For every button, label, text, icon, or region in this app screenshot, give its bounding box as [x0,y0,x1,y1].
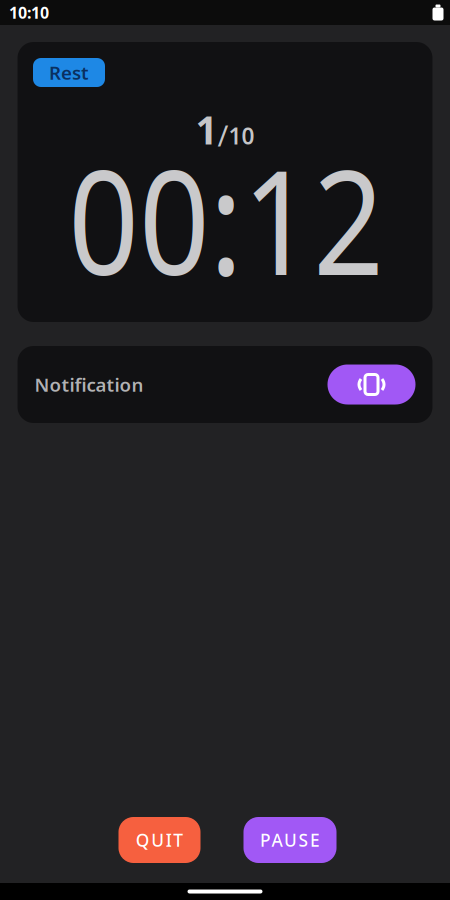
button[interactable]: PAUSE [243,817,336,863]
staticText: 10:10 [9,2,49,23]
staticText: Notification [34,372,143,397]
staticText: 00:12 [40,122,411,315]
staticText: 1/10 [195,104,254,155]
staticText: Rest [49,60,89,85]
button[interactable]: QUIT [118,817,200,863]
button[interactable]: Rest [33,58,105,87]
button[interactable]: Vibration [327,364,415,404]
staticText: QUIT [136,828,183,851]
staticText: PAUSE [260,828,320,851]
